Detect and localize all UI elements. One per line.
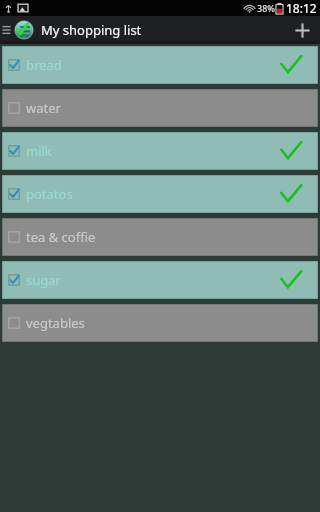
staticText: My shopping list (41, 21, 142, 39)
staticText: 38% (257, 2, 275, 14)
button[interactable]: Open navigation menu (0, 16, 144, 44)
button[interactable]: bread (2, 46, 318, 84)
button[interactable]: water (2, 89, 318, 127)
staticText: vegtables (26, 314, 85, 332)
staticText: bread (26, 56, 62, 74)
staticText: sugar (26, 271, 61, 289)
staticText: tea & coffie (26, 228, 96, 246)
button[interactable]: Add item (284, 16, 320, 44)
staticText: water (26, 99, 61, 117)
button[interactable]: tea & coffie (2, 218, 318, 256)
staticText: milk (26, 142, 52, 160)
staticText: 18:12 (286, 0, 317, 16)
button[interactable]: sugar (2, 261, 318, 299)
button[interactable]: vegtables (2, 304, 318, 342)
button[interactable]: potatos (2, 175, 318, 213)
button[interactable]: milk (2, 132, 318, 170)
staticText: potatos (26, 185, 73, 203)
